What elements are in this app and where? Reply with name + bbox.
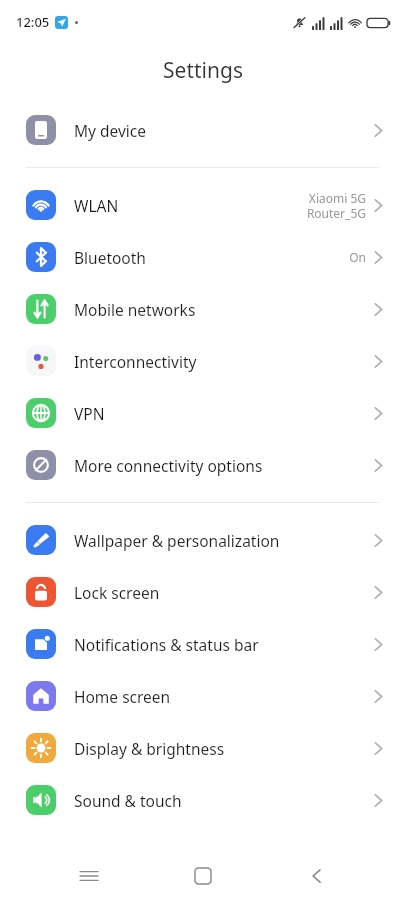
staticText: 12:05 bbox=[16, 13, 50, 31]
staticText: Xiaomi 5G Router_5G bbox=[306, 190, 366, 221]
staticText: On bbox=[349, 249, 366, 265]
button[interactable]: More connectivity options bbox=[0, 439, 405, 491]
button[interactable]: Recent apps bbox=[65, 852, 113, 900]
staticText: Bluetooth bbox=[74, 247, 146, 268]
button[interactable]: Back bbox=[292, 852, 340, 900]
staticText: Interconnectivity bbox=[74, 351, 197, 372]
staticText: Sound & touch bbox=[74, 790, 182, 811]
button[interactable]: Home bbox=[179, 852, 227, 900]
staticText: Home screen bbox=[74, 686, 171, 707]
staticText: My device bbox=[74, 120, 147, 141]
button[interactable]: Bluetooth bbox=[0, 231, 405, 283]
button[interactable]: VPN bbox=[0, 387, 405, 439]
button[interactable]: My device bbox=[0, 104, 405, 156]
button[interactable]: WLAN bbox=[0, 179, 405, 231]
staticText: Mobile networks bbox=[74, 299, 196, 320]
button[interactable]: Wallpaper & personalization bbox=[0, 514, 405, 566]
staticText: Display & brightness bbox=[74, 738, 225, 759]
button[interactable]: Display & brightness bbox=[0, 722, 405, 774]
staticText: Lock screen bbox=[74, 582, 160, 603]
staticText: Settings bbox=[163, 56, 243, 85]
staticText: Wallpaper & personalization bbox=[74, 530, 280, 551]
staticText: VPN bbox=[74, 403, 105, 424]
button[interactable]: Sound & touch bbox=[0, 774, 405, 826]
button[interactable]: Mobile networks bbox=[0, 283, 405, 335]
button[interactable]: Notifications & status bar bbox=[0, 618, 405, 670]
staticText: More connectivity options bbox=[74, 455, 263, 476]
button[interactable]: Home screen bbox=[0, 670, 405, 722]
staticText: Notifications & status bar bbox=[74, 634, 259, 655]
staticText: WLAN bbox=[74, 195, 119, 216]
button[interactable]: Lock screen bbox=[0, 566, 405, 618]
button[interactable]: Interconnectivity bbox=[0, 335, 405, 387]
